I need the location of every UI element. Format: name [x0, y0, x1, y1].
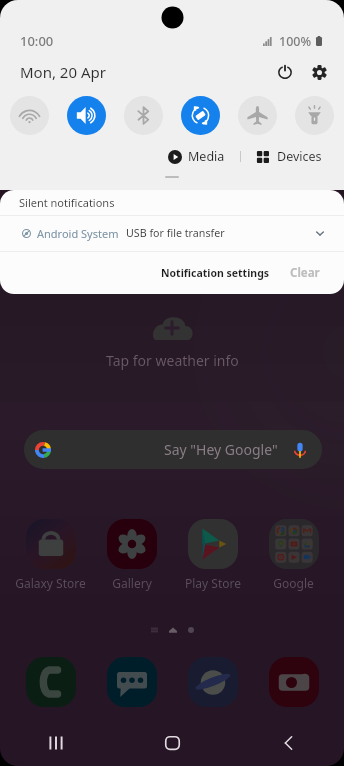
button[interactable]: Sound	[67, 96, 106, 135]
staticText: Say "Hey Google"	[164, 440, 278, 459]
button[interactable]: Auto rotate	[181, 96, 220, 135]
staticText: Mon, 20 Apr	[20, 62, 106, 82]
button[interactable]: Bluetooth	[124, 96, 163, 135]
staticText: Silent notifications	[19, 195, 115, 210]
button[interactable]: Android System	[0, 216, 344, 251]
staticText: Play Store	[185, 575, 241, 591]
button[interactable]: Recents	[37, 724, 75, 762]
staticText: 10:00	[20, 32, 54, 50]
button[interactable]: Clear	[286, 260, 324, 286]
button[interactable]: Settings	[305, 58, 333, 86]
button[interactable]: Gallery	[91, 519, 172, 591]
staticText: Notification settings	[161, 266, 270, 280]
button[interactable]: Flashlight	[295, 96, 334, 135]
staticText: Clear	[290, 265, 320, 281]
button[interactable]: Tap for weather info	[0, 314, 344, 370]
staticText: Devices	[277, 148, 322, 165]
button[interactable]: Devices	[254, 145, 324, 168]
button[interactable]: Play Store	[172, 519, 253, 591]
staticText: Google	[273, 575, 314, 591]
staticText: USB for file transfer	[126, 226, 225, 241]
button[interactable]: Messages	[107, 657, 157, 707]
button[interactable]: Power	[271, 58, 299, 86]
button[interactable]: Say "Hey Google"	[24, 430, 322, 469]
button[interactable]: Notification settings	[157, 261, 274, 285]
button[interactable]: Home	[153, 724, 191, 762]
staticText: Media	[188, 148, 225, 165]
staticText: Android System	[37, 226, 119, 241]
staticText: Galaxy Store	[15, 575, 86, 591]
button[interactable]: Galaxy Store	[10, 519, 91, 591]
button[interactable]: Camera	[269, 657, 319, 707]
button[interactable]: Internet	[188, 657, 238, 707]
button[interactable]: Silent notifications	[0, 190, 344, 215]
button[interactable]: Back	[269, 724, 307, 762]
staticText: 100%	[279, 33, 312, 50]
button[interactable]: Google	[253, 519, 334, 591]
button[interactable]: Media	[166, 145, 227, 168]
button[interactable]: Wi-Fi	[10, 96, 49, 135]
staticText: Tap for weather info	[106, 351, 239, 370]
button[interactable]: Phone	[26, 657, 76, 707]
button[interactable]: Flight mode	[238, 96, 277, 135]
staticText: Gallery	[112, 575, 152, 591]
